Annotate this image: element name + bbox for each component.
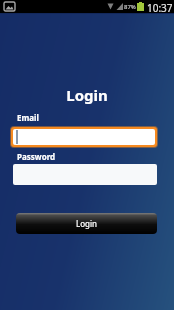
- button[interactable]: [10, 126, 158, 148]
- staticText: Login: [76, 218, 97, 229]
- staticText: Email: [17, 112, 39, 123]
- staticText: Login: [0, 85, 174, 105]
- staticText: Password: [17, 151, 56, 162]
- staticText: 10:37: [147, 1, 173, 14]
- staticText: 87%: [124, 3, 136, 11]
- button[interactable]: [13, 164, 157, 185]
- button[interactable]: Login: [16, 213, 157, 234]
